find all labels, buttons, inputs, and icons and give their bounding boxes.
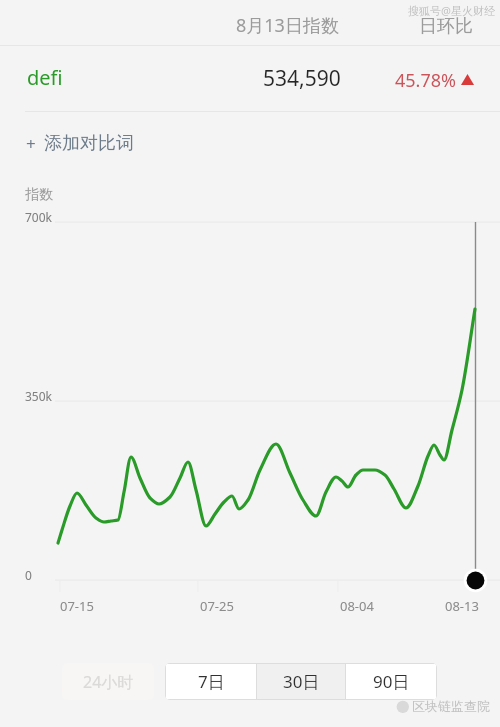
staticText: 添加对比词 bbox=[44, 132, 134, 155]
staticText: 7日 bbox=[198, 670, 225, 693]
staticText: 07-25 bbox=[200, 597, 234, 615]
staticText: 日环比 bbox=[419, 15, 473, 38]
staticText: 30日 bbox=[283, 670, 320, 693]
staticText: defi bbox=[27, 64, 63, 91]
staticText: 08-13 bbox=[445, 597, 479, 615]
staticText: 90日 bbox=[373, 670, 410, 693]
staticText: 区块链监查院 bbox=[412, 698, 490, 714]
button[interactable]: 30日 bbox=[257, 664, 345, 699]
staticText: 指数 bbox=[25, 186, 53, 204]
staticText: 08-04 bbox=[340, 597, 374, 615]
staticText: 45.78% bbox=[395, 68, 456, 93]
staticText: 07-15 bbox=[60, 597, 94, 615]
staticText: 0 bbox=[25, 567, 32, 583]
staticText: 8月13日指数 bbox=[236, 13, 339, 38]
button[interactable]: 24小时 bbox=[62, 663, 154, 700]
button[interactable]: + bbox=[0, 115, 500, 172]
staticText: 700k bbox=[25, 209, 53, 225]
staticText: + bbox=[26, 132, 36, 155]
staticText: 350k bbox=[25, 388, 53, 404]
button[interactable]: 90日 bbox=[346, 664, 436, 699]
staticText: 搜狐号@星火财经 bbox=[408, 3, 495, 18]
staticText: 24小时 bbox=[83, 671, 134, 693]
staticText: 534,590 bbox=[263, 64, 341, 93]
button[interactable]: 7日 bbox=[166, 664, 256, 699]
